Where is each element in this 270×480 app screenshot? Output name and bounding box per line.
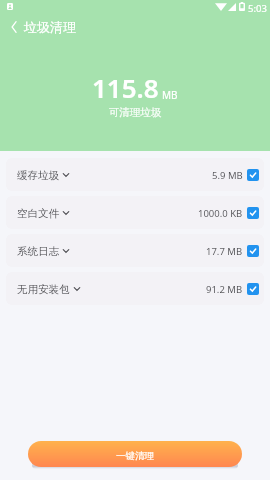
staticText: 5.9 MB bbox=[212, 169, 243, 182]
staticText: MB bbox=[162, 88, 178, 102]
button[interactable]: 系统日志 bbox=[6, 234, 264, 267]
button[interactable]: Select 缓存垃圾 bbox=[247, 169, 259, 181]
staticText: 系统日志 bbox=[17, 245, 59, 258]
staticText: 115.8 bbox=[92, 70, 159, 105]
staticText: 5:03 bbox=[248, 2, 267, 15]
button[interactable]: 无用安装包 bbox=[6, 272, 264, 305]
staticText: 缓存垃圾 bbox=[17, 169, 59, 182]
staticText: 17.7 MB bbox=[206, 245, 243, 258]
button[interactable]: 空白文件 bbox=[6, 196, 264, 229]
staticText: 无用安装包 bbox=[17, 283, 70, 296]
staticText: 91.2 MB bbox=[206, 283, 243, 296]
button[interactable]: 一键清理 bbox=[28, 441, 242, 467]
staticText: 可清理垃圾 bbox=[0, 106, 270, 119]
staticText: 1000.0 KB bbox=[198, 207, 243, 220]
button[interactable]: Select 空白文件 bbox=[247, 207, 259, 219]
button[interactable]: Select 无用安装包 bbox=[247, 283, 259, 295]
staticText: 一键清理 bbox=[116, 450, 154, 462]
button[interactable]: Select 系统日志 bbox=[247, 245, 259, 257]
button[interactable]: 缓存垃圾 bbox=[6, 158, 264, 191]
button[interactable]: Back bbox=[0, 15, 24, 39]
staticText: 空白文件 bbox=[17, 207, 59, 220]
staticText: 垃圾清理 bbox=[24, 19, 76, 35]
